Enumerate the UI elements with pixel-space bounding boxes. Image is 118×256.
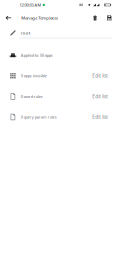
staticText: 0 word rules bbox=[21, 94, 43, 99]
staticText: Edit list bbox=[92, 73, 108, 79]
button[interactable]: 0 apps invisible bbox=[0, 65, 118, 86]
button[interactable]: Back bbox=[1, 10, 17, 26]
staticText: 0 apps invisible bbox=[21, 73, 47, 78]
staticText: root bbox=[21, 30, 30, 36]
staticText: Edit list bbox=[92, 93, 108, 99]
button[interactable]: Delete bbox=[89, 10, 101, 26]
staticText: Edit list bbox=[92, 114, 108, 120]
staticText: Applied to: 50 apps bbox=[21, 52, 53, 58]
button[interactable]: Applied to: 50 apps bbox=[0, 45, 118, 65]
staticText: 0 query param rules bbox=[21, 114, 57, 120]
staticText: 12:00:03 AM bbox=[19, 2, 41, 8]
button[interactable]: 0 query param rules bbox=[0, 107, 118, 127]
button[interactable]: Save bbox=[103, 10, 116, 26]
staticText: Manage Templates bbox=[21, 15, 58, 21]
button[interactable]: 0 word rules bbox=[0, 86, 118, 107]
